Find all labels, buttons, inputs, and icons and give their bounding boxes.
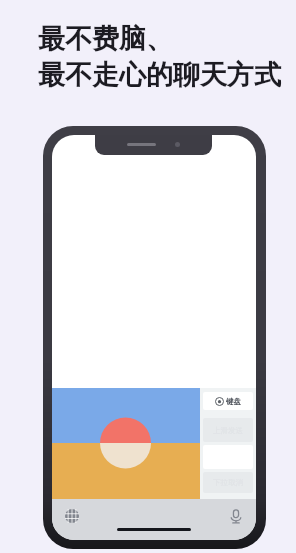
button[interactable]: Voice input [226,506,246,526]
button[interactable]: Switch keyboard language [62,506,82,526]
staticText: 最不费脑、 [38,22,173,56]
staticText: 键盘 [226,397,241,406]
button[interactable]: 键盘 [203,392,253,410]
staticText: 最不走心的聊天方式 [38,58,281,92]
